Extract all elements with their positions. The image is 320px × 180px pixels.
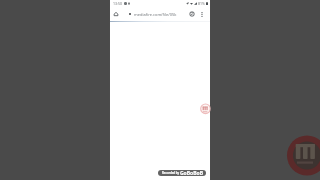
staticText: 2 (191, 12, 193, 16)
staticText: 81% (198, 1, 205, 6)
button[interactable]: Switch tabs (187, 9, 197, 19)
staticText: mediafire.com/file/05k (134, 12, 177, 17)
staticText: 13:50 (113, 1, 122, 6)
staticText: GoBoBoB (180, 170, 203, 176)
button[interactable]: mediafire.com/file/05k (125, 9, 190, 21)
button[interactable]: More options (197, 9, 206, 19)
staticText: Recorded by (162, 171, 180, 175)
button[interactable]: Home (111, 9, 121, 19)
